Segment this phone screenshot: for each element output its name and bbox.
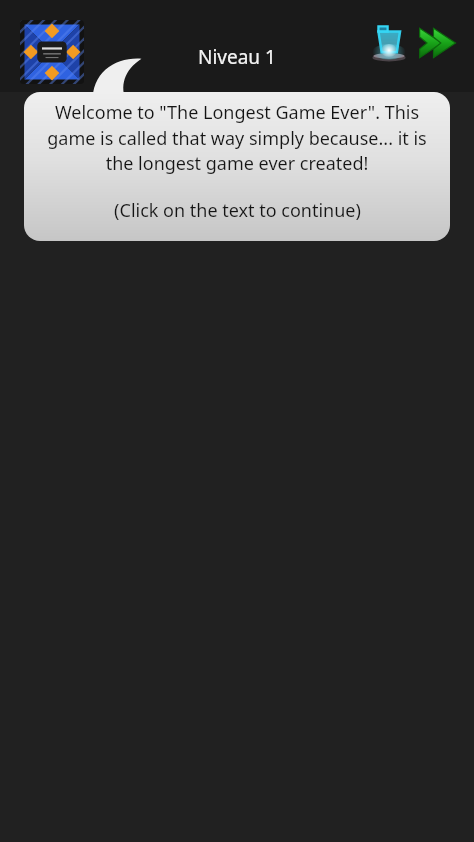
staticText: Niveau 1	[198, 44, 276, 70]
button[interactable]: App icon	[20, 20, 84, 84]
staticText: Welcome to "The Longest Game Ever". This…	[36, 100, 438, 175]
button[interactable]: Hologram projector	[366, 20, 412, 66]
button[interactable]: Fast forward	[416, 20, 462, 66]
staticText: (Click on the text to continue)	[114, 198, 361, 223]
button[interactable]: Welcome to "The Longest Game Ever". This…	[24, 92, 450, 241]
